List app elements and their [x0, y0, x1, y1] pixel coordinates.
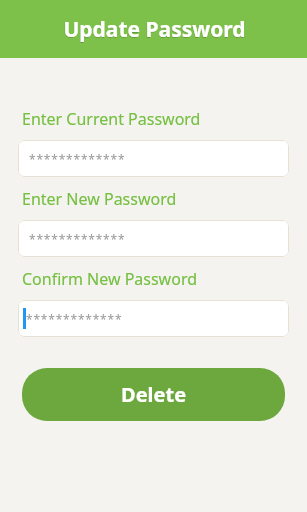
staticText: Enter New Password [22, 188, 177, 210]
staticText: Update Password [63, 15, 246, 44]
button[interactable]: Delete [22, 368, 285, 421]
button[interactable]: ************* [18, 220, 289, 257]
staticText: ************* [29, 151, 126, 167]
staticText: ************* [26, 311, 123, 327]
staticText: Delete [121, 381, 187, 408]
staticText: Enter Current Password [22, 108, 201, 130]
button[interactable]: ************* [18, 140, 289, 177]
staticText: Confirm New Password [22, 268, 198, 290]
button[interactable]: Text cursor [18, 300, 289, 337]
staticText: Update Password [63, 16, 246, 45]
staticText: ************* [29, 231, 126, 247]
